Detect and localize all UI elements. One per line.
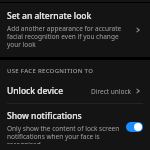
- button[interactable]: Show notifications: [0, 104, 150, 150]
- staticText: USE FACE RECOGNITION TO: [7, 67, 94, 75]
- staticText: Unlock device: [7, 85, 91, 97]
- staticText: Show notifications: [7, 110, 82, 122]
- staticText: Only show the content of lock screen not…: [7, 124, 122, 144]
- button[interactable]: Set an alternate look: [0, 3, 150, 57]
- button[interactable]: Unlock device: [0, 80, 150, 103]
- button[interactable]: Toggle on: [126, 122, 143, 132]
- staticText: Set an alternate look: [7, 10, 92, 22]
- staticText: Add another appearance for accurate faci…: [7, 24, 130, 49]
- staticText: Direct unlock: [91, 87, 132, 96]
